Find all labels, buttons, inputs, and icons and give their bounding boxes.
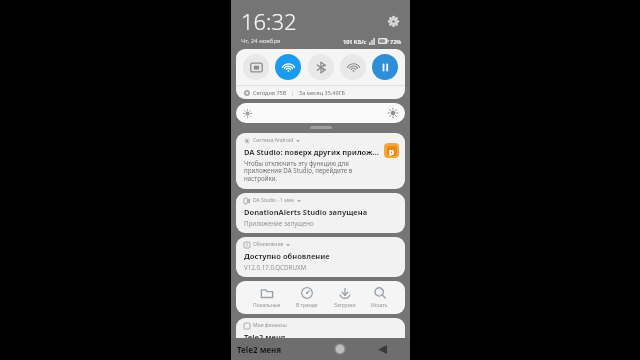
- staticText: Чт, 24 ноября: [241, 37, 281, 45]
- staticText: p: [389, 146, 395, 156]
- staticText: Приложение запущено: [244, 219, 314, 227]
- button[interactable]: Screen cast: [243, 54, 269, 80]
- staticText: Чтобы отключить эту функцию для приложен…: [244, 159, 380, 183]
- button[interactable]: Wi-Fi: [275, 54, 301, 80]
- button[interactable]: Обновление: [236, 237, 405, 277]
- button[interactable]: Bluetooth: [308, 54, 334, 80]
- button[interactable]: DA Studio · 1 мин: [236, 193, 405, 233]
- staticText: В тренде: [296, 302, 318, 309]
- button[interactable]: Система Android: [236, 133, 405, 189]
- button[interactable]: В тренде: [293, 286, 321, 309]
- staticText: DA Studio · 1 мин: [253, 197, 295, 204]
- staticText: Tele2 меня: [237, 344, 282, 355]
- staticText: Покальные: [253, 302, 281, 309]
- button[interactable]: Загрузки: [331, 286, 359, 309]
- staticText: Система Android: [253, 137, 294, 144]
- button[interactable]: Мои финансы: [236, 318, 405, 358]
- button[interactable]: Mobile data: [372, 54, 398, 80]
- button[interactable]: Home: [328, 338, 352, 360]
- staticText: DA Studio: поверх других приложен..: [244, 147, 380, 157]
- staticText: Мои финансы: [253, 322, 287, 329]
- staticText: |: [291, 89, 295, 96]
- staticText: V12.0.17.0.QCDRUXM: [244, 263, 307, 271]
- button[interactable]: Hotspot: [340, 54, 366, 80]
- button[interactable]: Back: [370, 338, 394, 360]
- button[interactable]: Settings: [384, 12, 402, 30]
- staticText: Загрузки: [334, 302, 356, 309]
- staticText: Сегодня 75В: [253, 89, 287, 96]
- staticText: Доступно обновление: [244, 251, 330, 261]
- staticText: Искать: [371, 302, 388, 309]
- staticText: 101 КБ/с: [343, 38, 367, 45]
- button[interactable]: Brightness: [236, 103, 405, 123]
- staticText: DonationAlerts Studio запущена: [244, 207, 368, 217]
- staticText: Баланс: 28,08р: [244, 344, 289, 352]
- button[interactable]: Покальные: [250, 286, 284, 309]
- staticText: Обновление: [253, 241, 284, 248]
- staticText: 72%: [390, 38, 402, 45]
- staticText: 16:32: [241, 6, 297, 36]
- staticText: За месяц 35,49ГБ: [299, 89, 345, 96]
- staticText: Tele2 меня: [244, 332, 286, 342]
- button[interactable]: Искать: [368, 286, 391, 309]
